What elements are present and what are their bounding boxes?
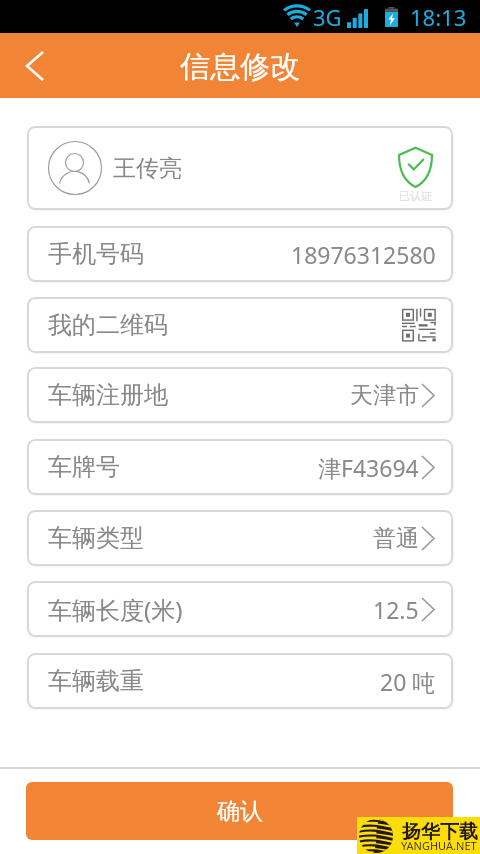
staticText: 20 吨 [380,666,436,697]
staticText: 天津市 [350,381,419,410]
staticText: 车辆类型 [48,523,144,553]
staticText: 我的二维码 [48,310,168,340]
staticText: 普通 [373,524,419,553]
staticText: 王传亮 [113,154,182,183]
staticText: 车辆长度(米) [48,593,183,626]
staticText: 12.5 [373,594,419,625]
button[interactable]: 车牌号 [27,439,453,495]
button[interactable]: Back [0,33,69,98]
button[interactable]: 确认 [26,782,453,840]
button[interactable]: 车辆载重 [27,653,453,709]
staticText: 确认 [217,797,263,826]
staticText: 车牌号 [48,452,120,482]
staticText: 3G [313,2,342,32]
button[interactable]: 车辆注册地 [27,367,453,423]
staticText: 扬华下载 [402,820,478,844]
staticText: 车辆载重 [48,666,144,696]
button[interactable]: 车辆类型 [27,510,453,566]
staticText: 车辆注册地 [48,380,168,410]
staticText: 18976312580 [291,239,436,270]
button[interactable]: 王传亮 [27,126,453,210]
button[interactable]: 车辆长度(米) [27,581,453,637]
staticText: 信息修改 [180,48,300,86]
staticText: 已认证 [399,189,432,203]
button[interactable]: 信息修改 [0,33,480,98]
staticText: 手机号码 [48,239,144,269]
staticText: YANGHUA.NET [401,838,477,853]
button[interactable]: 我的二维码 [27,297,453,353]
staticText: 津F43694 [318,452,419,483]
button[interactable]: 手机号码 [27,226,453,282]
staticText: 18:13 [410,2,467,32]
